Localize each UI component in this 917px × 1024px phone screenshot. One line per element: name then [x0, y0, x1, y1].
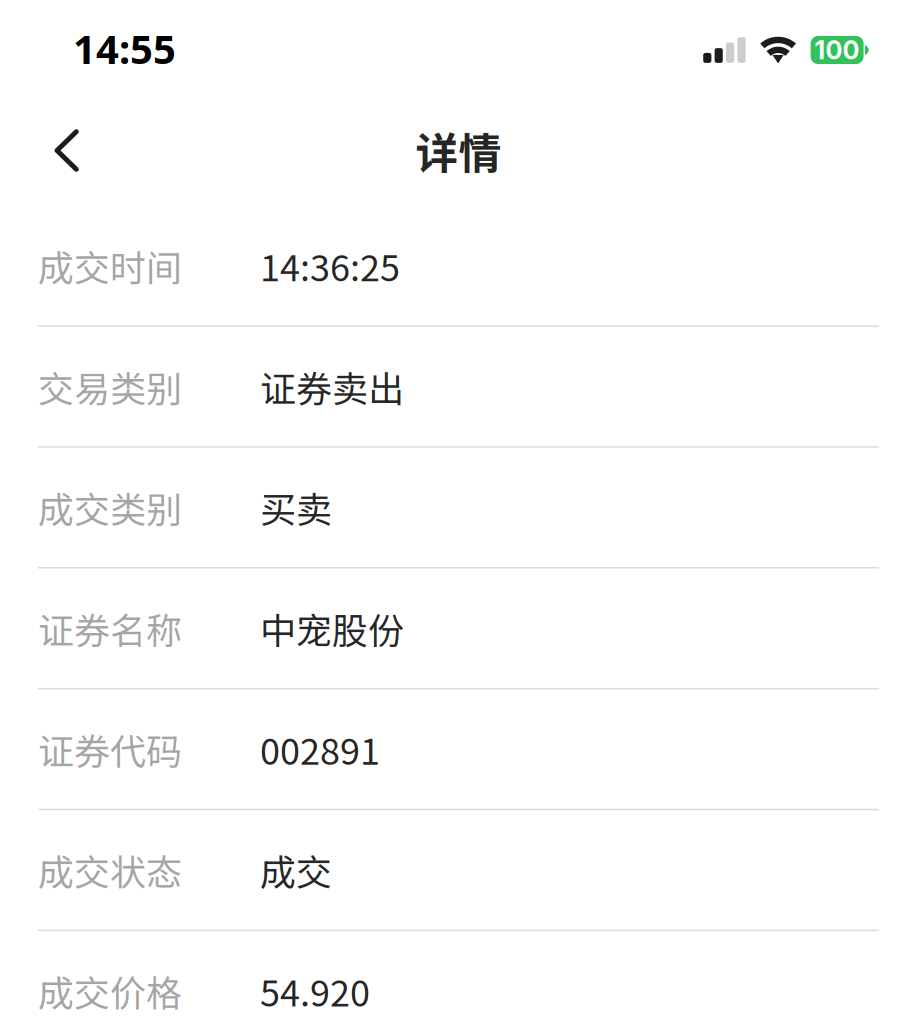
staticText: 14:36:25 — [260, 240, 400, 292]
staticText: 002891 — [260, 723, 380, 775]
button[interactable]: 证券代码 — [38, 689, 879, 810]
staticText: 买卖 — [260, 481, 332, 533]
button[interactable]: 成交价格 — [38, 931, 879, 1024]
staticText: 成交价格 — [38, 965, 182, 1017]
staticText: 证券代码 — [38, 723, 182, 775]
button[interactable]: 证券名称 — [38, 568, 879, 689]
staticText: 100 — [815, 35, 860, 65]
staticText: 交易类别 — [38, 360, 182, 413]
button[interactable]: Back — [0, 105, 110, 201]
button[interactable]: 成交类别 — [38, 448, 879, 568]
staticText: 中宠股份 — [260, 602, 404, 654]
staticText: 成交状态 — [38, 844, 182, 896]
staticText: 成交时间 — [38, 240, 182, 292]
staticText: 54.920 — [260, 965, 370, 1017]
button[interactable]: 成交时间 — [38, 206, 879, 327]
staticText: 详情 — [415, 120, 501, 181]
staticText: 成交 — [260, 844, 332, 896]
staticText: 证券名称 — [38, 602, 182, 654]
staticText: 成交类别 — [38, 481, 182, 533]
staticText: 14:55 — [73, 21, 176, 76]
staticText: 证券卖出 — [260, 360, 404, 413]
button[interactable]: 成交状态 — [38, 810, 879, 931]
button[interactable]: 交易类别 — [38, 327, 879, 448]
